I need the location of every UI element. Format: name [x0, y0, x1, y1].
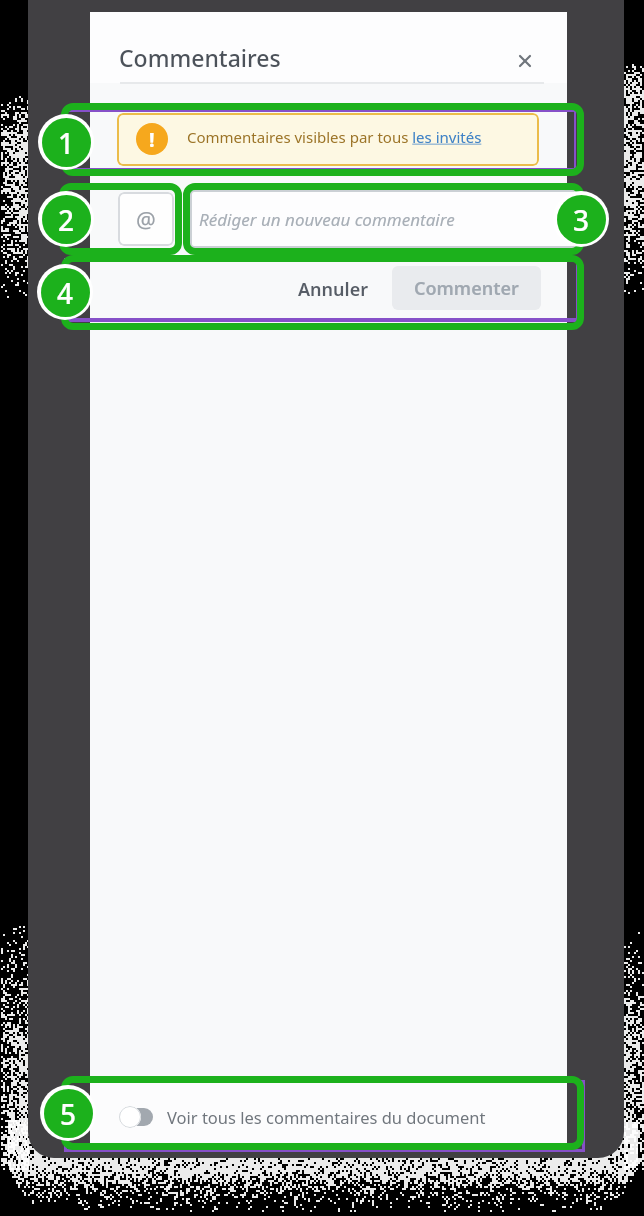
- staticText: @: [136, 204, 156, 234]
- button[interactable]: Rédiger un nouveau commentaire: [190, 190, 577, 248]
- button[interactable]: [112, 1098, 372, 1136]
- staticText: Commenter: [414, 276, 519, 301]
- button[interactable]: [117, 113, 539, 166]
- button[interactable]: @: [118, 192, 174, 246]
- button[interactable]: [513, 49, 537, 73]
- staticText: 2: [58, 201, 75, 239]
- staticText: !: [149, 126, 155, 153]
- staticText: Annuler: [298, 277, 368, 302]
- staticText: Rédiger un nouveau commentaire: [199, 208, 455, 231]
- staticText: Commentaires visibles par tous les invit…: [187, 127, 482, 147]
- staticText: 5: [60, 1095, 77, 1133]
- staticText: Commentaires: [119, 42, 281, 73]
- staticText: 4: [57, 274, 74, 312]
- staticText: 3: [573, 201, 590, 239]
- button[interactable]: Annuler: [287, 269, 379, 309]
- staticText: Voir tous les commentaires du document: [167, 1106, 486, 1128]
- button[interactable]: Commenter: [392, 266, 541, 310]
- staticText: 1: [58, 124, 75, 162]
